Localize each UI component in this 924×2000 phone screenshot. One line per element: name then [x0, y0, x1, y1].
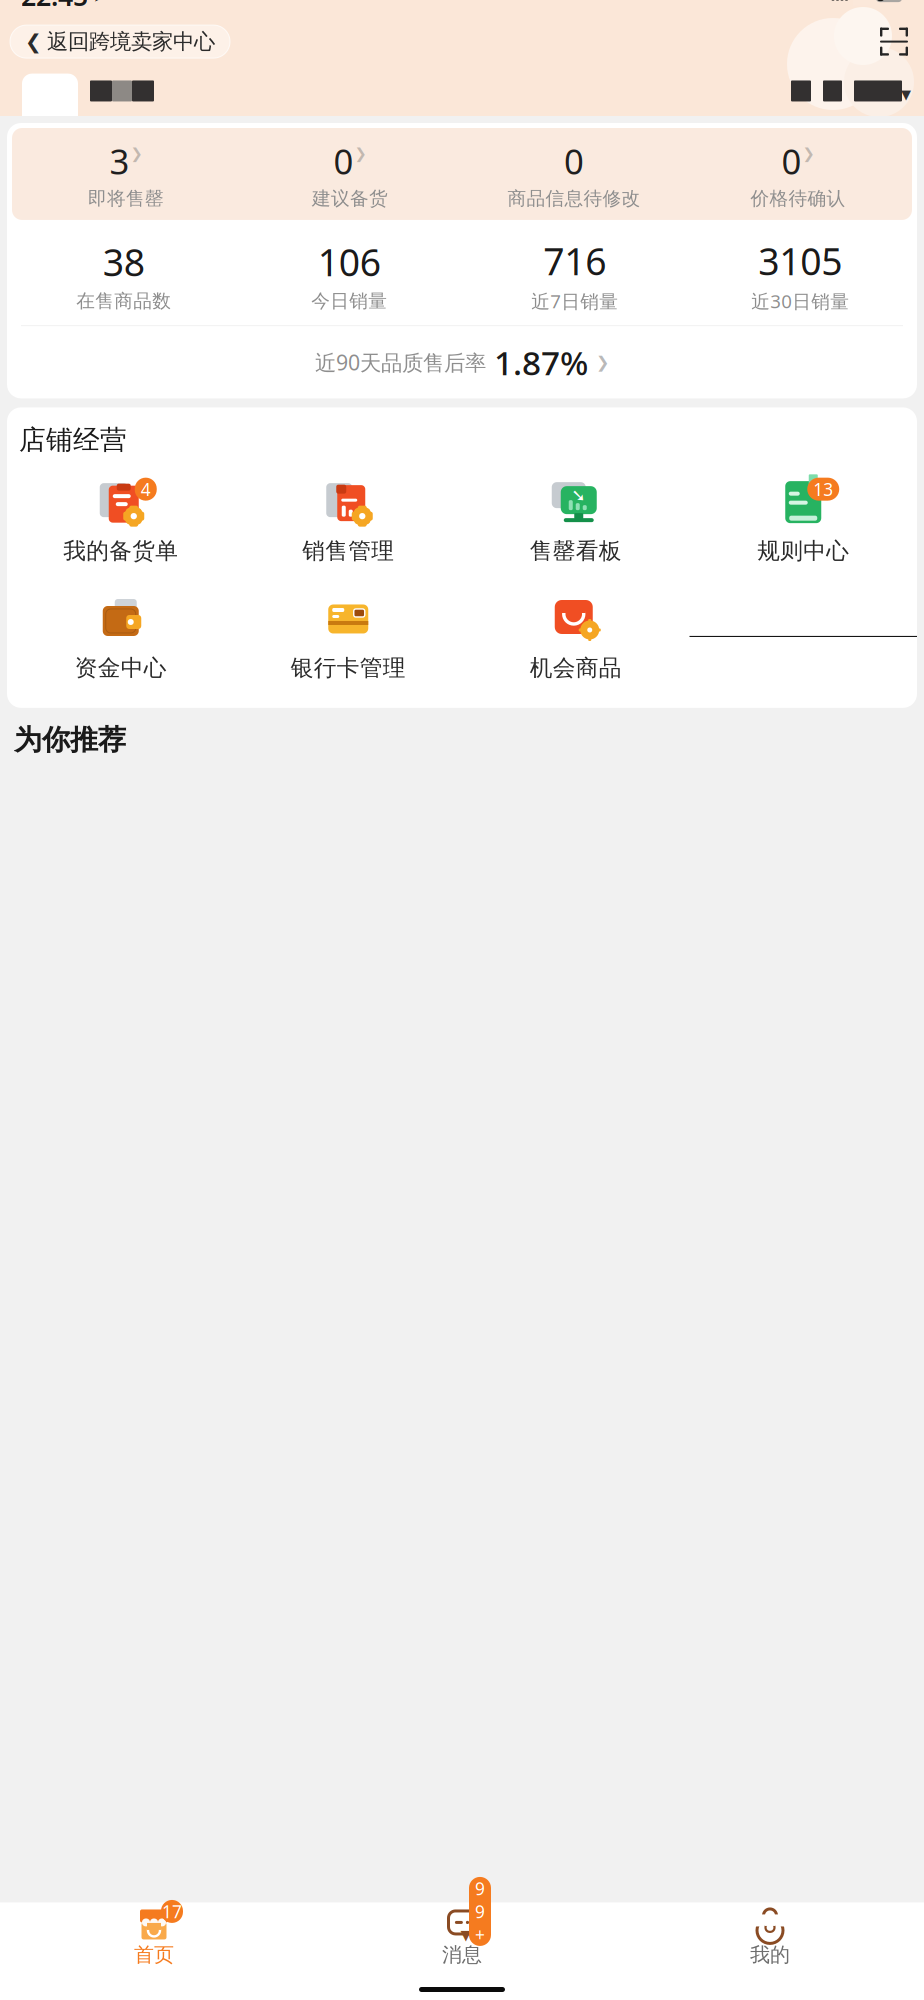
staticText: 1.87%: [494, 340, 588, 384]
staticText: 资金中心: [75, 654, 167, 682]
staticText: ❮: [25, 30, 42, 53]
staticText: 销售管理: [302, 537, 394, 565]
staticText: 价格待确认: [750, 187, 845, 210]
staticText: 近30日销量: [751, 288, 849, 313]
staticText: 售罄看板: [530, 537, 622, 565]
button[interactable]: ▾: [689, 474, 917, 565]
button[interactable]: 近90天品质售后率: [7, 326, 917, 398]
staticText: 38: [103, 237, 145, 286]
button[interactable]: 17: [0, 1902, 308, 1967]
staticText: 我的备货单: [63, 537, 178, 565]
staticText: 0: [333, 138, 353, 184]
button[interactable]: 4: [7, 474, 234, 565]
staticText: ▾: [901, 83, 911, 105]
button[interactable]: 我的: [616, 1902, 924, 1967]
staticText: ➤: [93, 0, 108, 5]
staticText: 消息: [442, 1942, 482, 1967]
staticText: 首页: [134, 1942, 174, 1967]
button[interactable]: 3: [14, 128, 238, 220]
staticText: 716: [543, 236, 606, 286]
staticText: 3: [109, 138, 129, 184]
staticText: 在售商品数: [76, 289, 171, 312]
staticText: 21: [884, 0, 898, 3]
button[interactable]: 0: [686, 128, 910, 220]
staticText: ▾: [460, 1922, 471, 1946]
staticText: 即将售罄: [88, 187, 164, 210]
staticText: 为你推荐: [14, 723, 126, 757]
staticText: 近7日销量: [531, 288, 618, 313]
staticText: ❯: [130, 145, 142, 162]
staticText: 今日销量: [311, 289, 387, 312]
staticText: 机会商品: [530, 654, 622, 682]
button[interactable]: 0: [238, 128, 462, 220]
staticText: 3105: [758, 236, 842, 286]
staticText: 17: [162, 1900, 182, 1923]
button[interactable]: 销售管理: [234, 474, 462, 565]
staticText: ❯: [802, 145, 814, 162]
staticText: ➘: [571, 485, 586, 505]
staticText: 建议备货: [312, 187, 388, 210]
staticText: ❯: [354, 145, 366, 162]
button[interactable]: ➘: [462, 474, 689, 565]
staticText: 返回跨境卖家中心: [47, 28, 215, 55]
staticText: 我的: [750, 1942, 790, 1967]
button[interactable]: 扫一扫: [874, 22, 914, 62]
staticText: 106: [318, 237, 381, 286]
staticText: 13: [813, 478, 833, 501]
button[interactable]: 0: [462, 128, 686, 220]
button[interactable]: ❮: [10, 25, 230, 58]
staticText: ❯: [596, 353, 609, 371]
button[interactable]: 机会商品: [462, 591, 689, 682]
button[interactable]: 银行卡管理: [234, 591, 462, 682]
staticText: 店铺经营: [19, 423, 127, 456]
staticText: 银行卡管理: [291, 654, 406, 682]
staticText: 4: [141, 478, 151, 501]
staticText: 0: [781, 138, 801, 184]
staticText: 近90天品质售后率: [315, 348, 486, 376]
staticText: 99+: [475, 1877, 485, 1946]
staticText: 22:45: [21, 0, 88, 13]
button[interactable]: 资金中心: [7, 591, 234, 682]
staticText: 0: [564, 138, 584, 184]
staticText: ▾: [810, 486, 816, 500]
staticText: 69 人关注: [801, 112, 902, 142]
staticText: 规则中心: [757, 537, 849, 565]
staticText: 商品信息待修改: [507, 187, 640, 210]
button[interactable]: ▾: [308, 1902, 616, 1967]
